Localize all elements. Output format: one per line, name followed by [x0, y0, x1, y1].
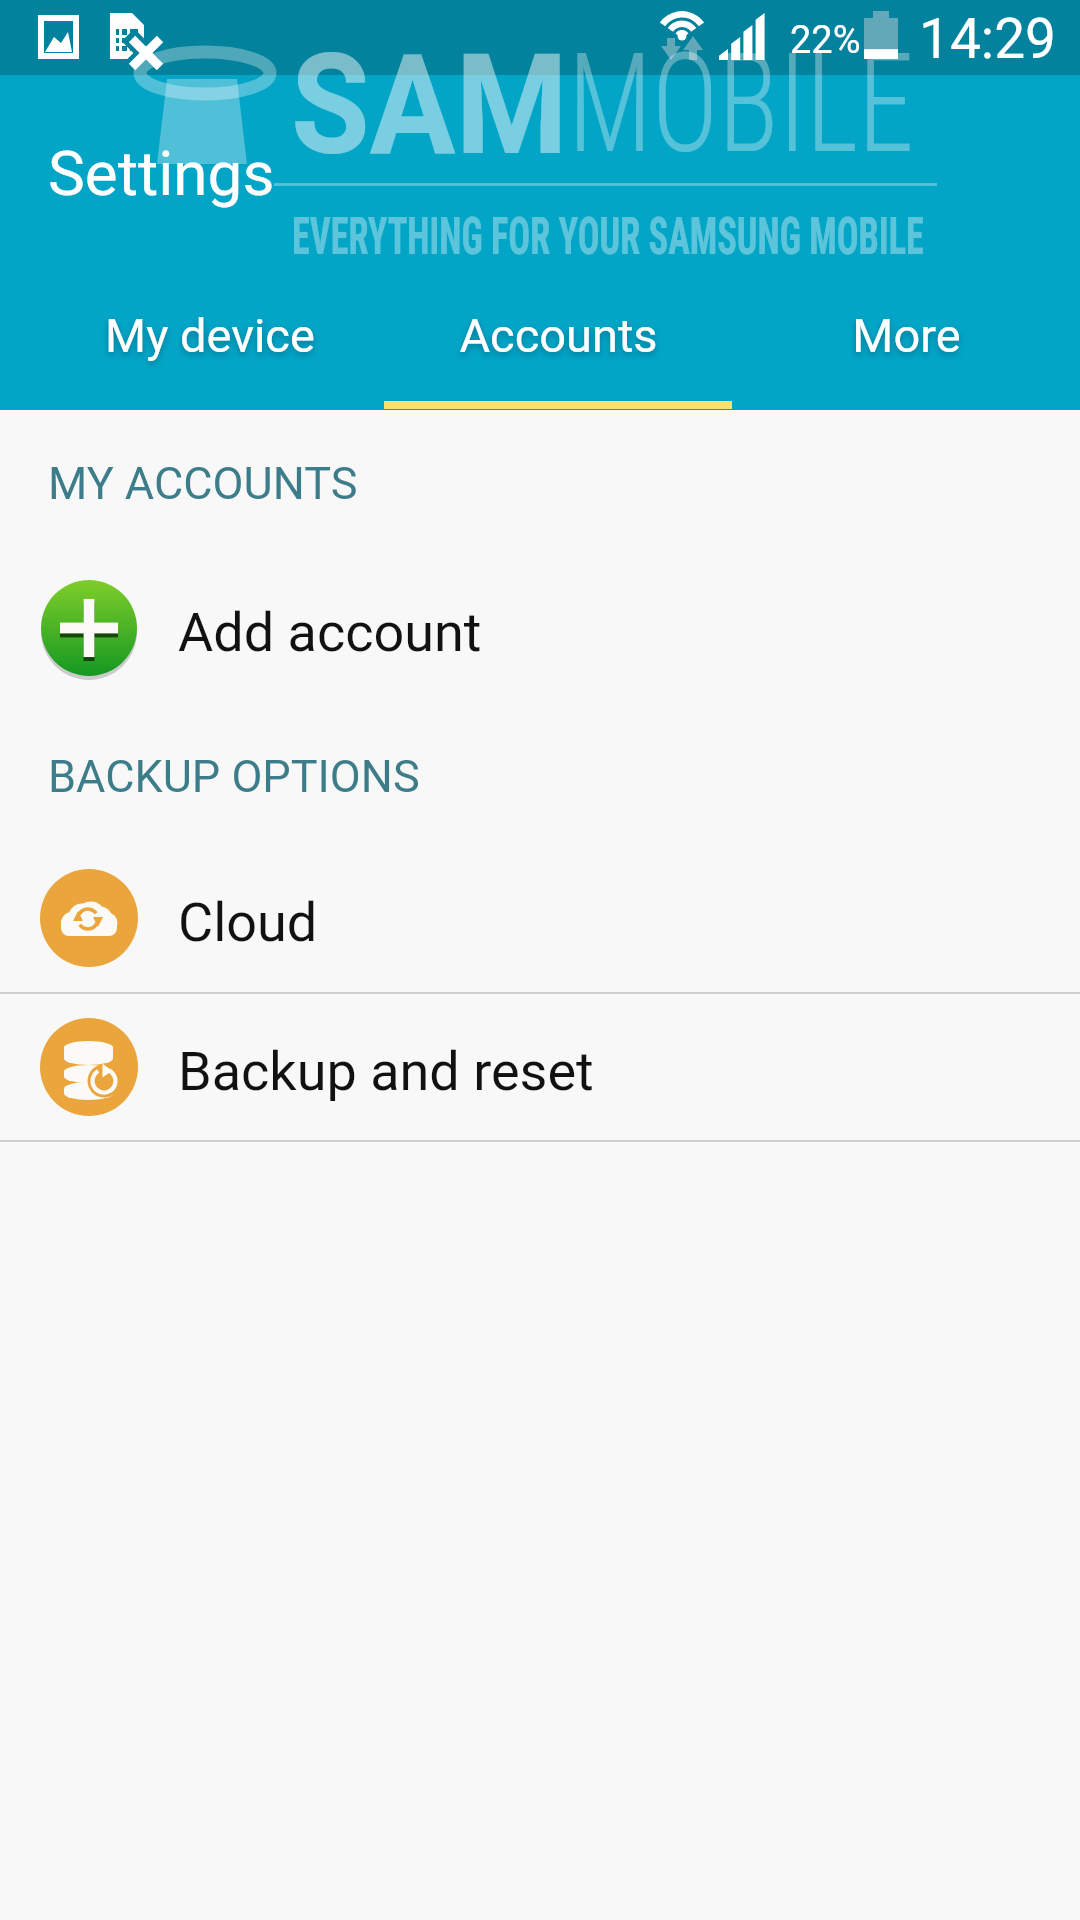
staticText: Backup and reset [178, 1040, 594, 1103]
staticText: More [852, 308, 961, 363]
staticText: Add account [178, 601, 482, 664]
staticText: Cloud [178, 891, 318, 954]
button[interactable]: More [732, 75, 1080, 410]
button[interactable]: Cloud [0, 844, 1080, 992]
staticText: My device [105, 308, 315, 363]
staticText: EVERYTHING FOR YOUR SAMSUNG MOBILE [292, 207, 924, 267]
other: Cloud [40, 869, 138, 967]
staticText: MOBILE [568, 24, 914, 185]
button[interactable]: My device [35, 75, 384, 410]
staticText: 22% [790, 18, 861, 63]
staticText: MY ACCOUNTS [48, 457, 358, 510]
button[interactable]: Backup and reset [0, 994, 1080, 1140]
button[interactable]: Add account [0, 554, 1080, 702]
staticText: Settings [48, 137, 275, 210]
staticText: 14:29 [919, 7, 1056, 71]
staticText: BACKUP OPTIONS [48, 750, 420, 803]
button[interactable]: Accounts [384, 75, 732, 410]
other: Add account [40, 579, 138, 677]
staticText: Accounts [459, 308, 658, 363]
staticText: SAM [291, 24, 568, 187]
other: Backup and reset [40, 1018, 138, 1116]
